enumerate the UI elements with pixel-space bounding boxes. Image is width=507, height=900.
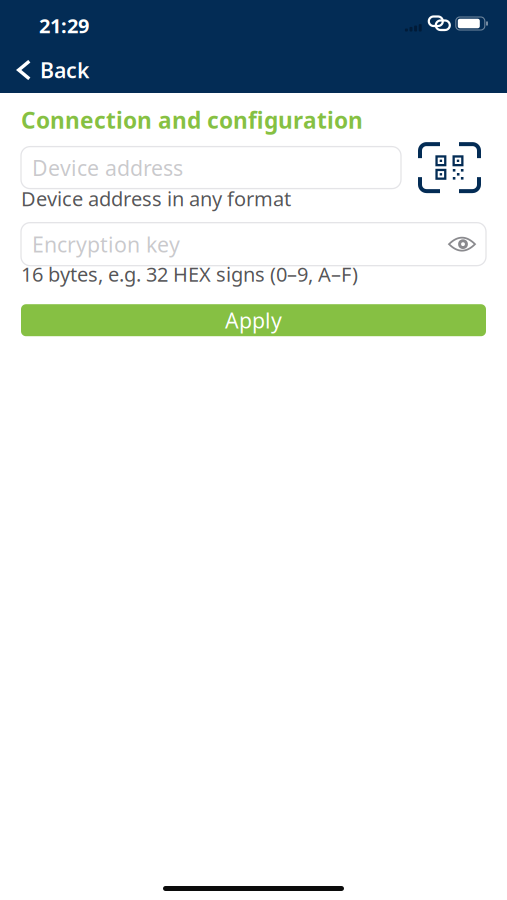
- staticText: Encryption key: [32, 230, 180, 258]
- button[interactable]: Back: [0, 47, 108, 93]
- staticText: Apply: [225, 306, 282, 334]
- staticText: 16 bytes, e.g. 32 HEX signs (0–9, A–F): [21, 261, 358, 287]
- staticText: Device address: [32, 153, 183, 182]
- staticText: Device address in any format: [21, 185, 291, 212]
- button[interactable]: Apply: [21, 304, 486, 336]
- staticText: Back: [40, 56, 90, 84]
- button[interactable]: Scan QR code: [418, 142, 486, 193]
- staticText: 21:29: [39, 12, 89, 39]
- button[interactable]: Show encryption key: [448, 235, 476, 253]
- staticText: Connection and configuration: [21, 105, 363, 135]
